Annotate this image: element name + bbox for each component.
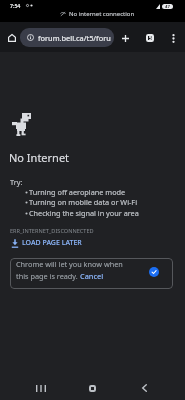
button[interactable]: Dismiss [149, 267, 159, 277]
staticText: forum.bell.ca/t5/foru [38, 33, 111, 43]
staticText: No Internet [9, 150, 70, 165]
staticText: this page is ready. [16, 271, 80, 281]
staticText: 7:54 [10, 2, 21, 9]
staticText: Turning off aeroplane mode [29, 187, 126, 197]
button[interactable]: Tabs [140, 28, 160, 48]
staticText: Checking the signal in your area [29, 208, 139, 218]
button[interactable]: New tab [115, 28, 135, 48]
staticText: Try: [10, 177, 23, 187]
staticText: Turning on mobile data or Wi-Fi [29, 197, 138, 207]
staticText: 5 [149, 35, 152, 42]
button[interactable]: Recent apps [28, 375, 54, 400]
staticText: ERR_INTERNET_DISCONNECTED [10, 227, 94, 235]
staticText: Chrome will let you know when [16, 259, 123, 269]
button[interactable]: Cancel [80, 271, 104, 281]
staticText: LOAD PAGE LATER [22, 238, 82, 248]
staticText: No internet connection [69, 10, 135, 18]
button[interactable]: Home [2, 28, 22, 48]
button[interactable]: LOAD PAGE LATER [10, 238, 82, 248]
staticText: 47 [165, 4, 170, 9]
button[interactable]: Back [131, 375, 157, 400]
button[interactable]: Home [79, 375, 105, 400]
button[interactable]: More options [163, 28, 183, 48]
button[interactable]: forum.bell.ca/t5/foru [20, 28, 114, 47]
